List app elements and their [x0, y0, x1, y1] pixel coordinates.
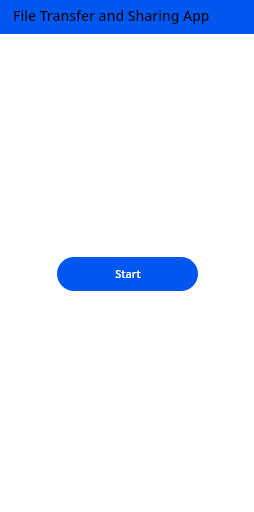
staticText: File Transfer and Sharing App [13, 6, 210, 25]
button[interactable]: Start [57, 257, 198, 291]
staticText: Start [115, 266, 141, 281]
